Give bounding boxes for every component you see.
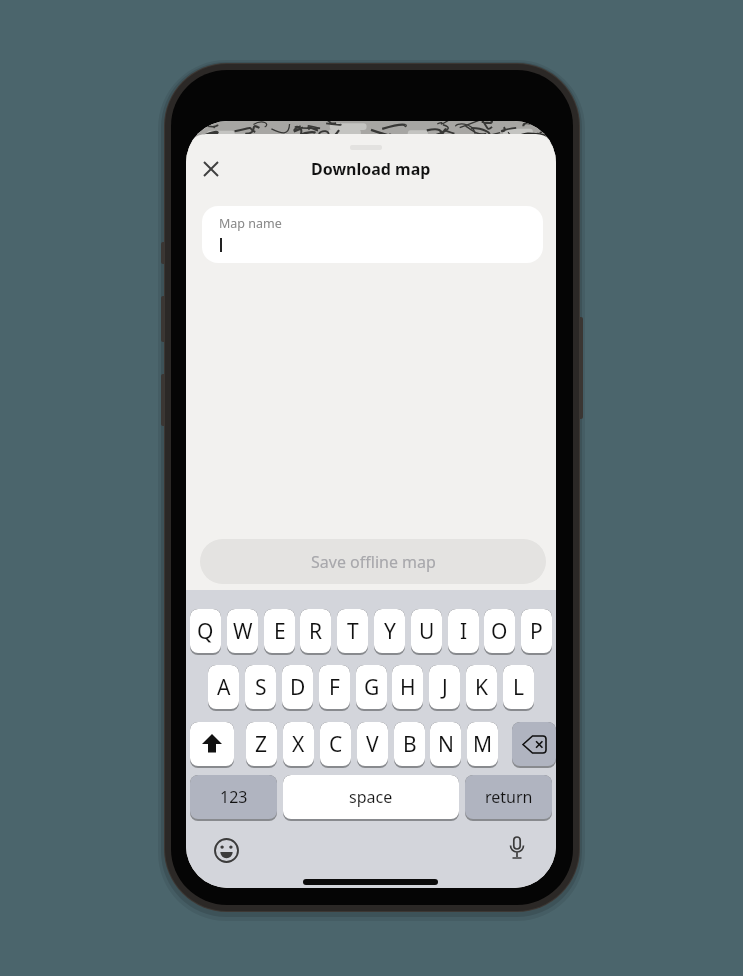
staticText: D <box>290 673 306 702</box>
staticText: L <box>513 673 525 702</box>
button[interactable]: C <box>320 722 351 768</box>
staticText: S <box>255 673 267 702</box>
staticText: K <box>475 673 488 702</box>
button[interactable]: Save offline map <box>200 539 546 584</box>
button[interactable]: W <box>227 609 258 655</box>
staticText: E <box>274 617 286 646</box>
button[interactable]: Y <box>374 609 405 655</box>
staticText: Map name <box>219 215 282 232</box>
staticText: space <box>349 786 393 808</box>
button[interactable] <box>211 835 241 865</box>
staticText: A <box>217 673 231 702</box>
button[interactable]: I <box>448 609 479 655</box>
button[interactable]: U <box>411 609 442 655</box>
button[interactable]: L <box>503 665 534 711</box>
button[interactable]: V <box>357 722 388 768</box>
staticText: C <box>329 730 343 759</box>
button[interactable]: 123 <box>190 775 277 821</box>
button[interactable]: P <box>521 609 552 655</box>
staticText: N <box>438 730 454 759</box>
button[interactable]: space <box>283 775 459 821</box>
staticText: U <box>419 617 435 646</box>
staticText: O <box>491 617 508 646</box>
button[interactable]: O <box>484 609 515 655</box>
staticText: P <box>530 617 543 646</box>
button[interactable]: T <box>337 609 368 655</box>
staticText: 123 <box>220 786 248 808</box>
button[interactable]: M <box>467 722 498 768</box>
button[interactable] <box>503 834 531 864</box>
button[interactable]: R <box>300 609 331 655</box>
button[interactable]: H <box>392 665 423 711</box>
button[interactable]: return <box>465 775 552 821</box>
staticText: R <box>309 617 323 646</box>
button[interactable]: S <box>245 665 276 711</box>
button[interactable]: B <box>394 722 425 768</box>
button[interactable]: E <box>264 609 295 655</box>
staticText: Download map <box>311 158 431 180</box>
button[interactable]: F <box>319 665 350 711</box>
button[interactable]: G <box>356 665 387 711</box>
staticText: V <box>366 730 379 759</box>
staticText: F <box>329 673 340 702</box>
button[interactable] <box>197 155 225 183</box>
button[interactable]: Map name <box>202 206 543 263</box>
staticText: T <box>347 617 359 646</box>
staticText: Save offline map <box>311 551 436 573</box>
staticText: H <box>400 673 416 702</box>
button[interactable]: Z <box>246 722 277 768</box>
staticText: B <box>403 730 417 759</box>
button[interactable]: A <box>208 665 239 711</box>
button[interactable]: N <box>430 722 461 768</box>
staticText: J <box>442 673 448 702</box>
staticText: G <box>364 673 380 702</box>
staticText: I <box>460 617 468 646</box>
button[interactable]: K <box>466 665 497 711</box>
staticText: Y <box>384 617 396 646</box>
button[interactable] <box>190 722 234 768</box>
button[interactable]: J <box>429 665 460 711</box>
staticText: Z <box>255 730 268 759</box>
button[interactable] <box>512 722 556 768</box>
staticText: W <box>233 617 253 646</box>
staticText: X <box>292 730 305 759</box>
staticText: Q <box>197 617 214 646</box>
staticText: return <box>485 786 533 808</box>
button[interactable]: Q <box>190 609 221 655</box>
button[interactable]: X <box>283 722 314 768</box>
button[interactable]: D <box>282 665 313 711</box>
staticText: M <box>473 730 493 759</box>
